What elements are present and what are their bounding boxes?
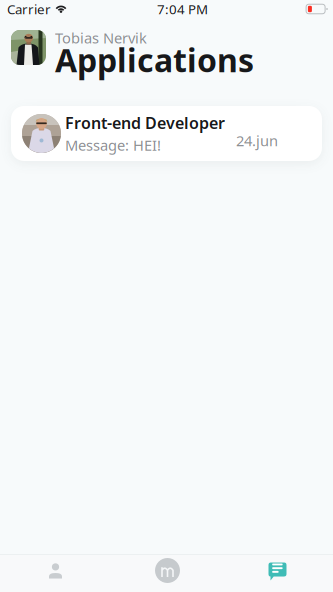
button[interactable]: Home — [111, 555, 222, 592]
staticText: Message: HEI! — [65, 135, 161, 155]
staticText: 7:04 PM — [157, 0, 208, 18]
staticText: Applications — [55, 38, 254, 81]
staticText: 24.jun — [236, 131, 278, 150]
button[interactable]: Messages — [222, 555, 333, 592]
staticText: Carrier — [7, 0, 51, 18]
staticText: Tobias Nervik — [55, 28, 147, 47]
staticText: Front-end Developer — [65, 112, 225, 133]
button[interactable]: Profile — [0, 555, 111, 592]
button[interactable]: Front-end Developer — [11, 106, 322, 161]
